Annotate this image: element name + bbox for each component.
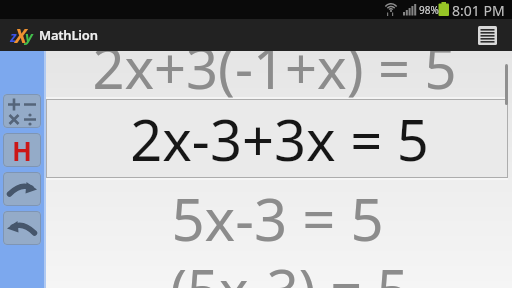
staticText: MathLion [39, 26, 98, 44]
staticText: 8:01 PM [452, 1, 505, 20]
button[interactable] [478, 26, 497, 45]
staticText: 2x-3+3x = 5 [130, 101, 429, 177]
staticText: 2x+3(-1+x) = 5 [92, 51, 457, 105]
staticText: z [10, 27, 17, 46]
staticText: (5x-3) = 5 [170, 251, 409, 288]
button[interactable]: H [3, 133, 41, 167]
staticText: 98% [419, 3, 439, 17]
button[interactable]: (5x-3) = 5 [56, 250, 512, 288]
button[interactable]: 5x-3 = 5 [46, 179, 510, 257]
button[interactable] [3, 172, 41, 206]
button[interactable]: 2x+3(-1+x) = 5 [46, 51, 507, 106]
button[interactable]: 2x-3+3x = 5 [46, 100, 512, 178]
staticText: 5x-3 = 5 [171, 179, 384, 257]
button[interactable] [46, 99, 508, 178]
staticText: y [25, 26, 33, 46]
button[interactable] [3, 94, 41, 128]
button[interactable] [3, 211, 41, 245]
staticText: H [12, 133, 32, 167]
staticText: X [15, 23, 27, 49]
